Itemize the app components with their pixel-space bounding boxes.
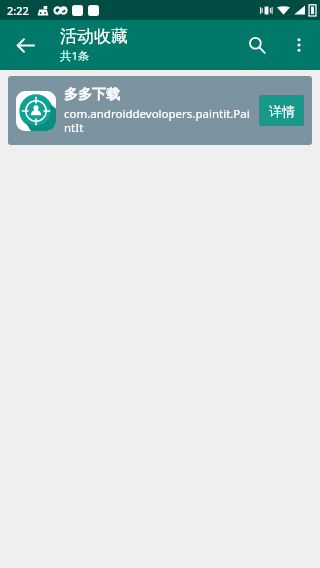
button[interactable]: More options (278, 24, 320, 66)
button[interactable]: Back (6, 26, 44, 64)
staticText: 详情 (269, 103, 295, 119)
staticText: 2:22 (7, 3, 29, 18)
staticText: 共1条 (60, 48, 90, 64)
staticText: 多多下载 (64, 86, 120, 104)
staticText: 活动收藏 (60, 26, 128, 47)
button[interactable]: 多多下载 (8, 76, 312, 145)
button[interactable]: 详情 (259, 95, 304, 126)
staticText: com.androiddevolopers.paintit.PaintIt (64, 106, 253, 135)
button[interactable]: Search (236, 24, 278, 66)
